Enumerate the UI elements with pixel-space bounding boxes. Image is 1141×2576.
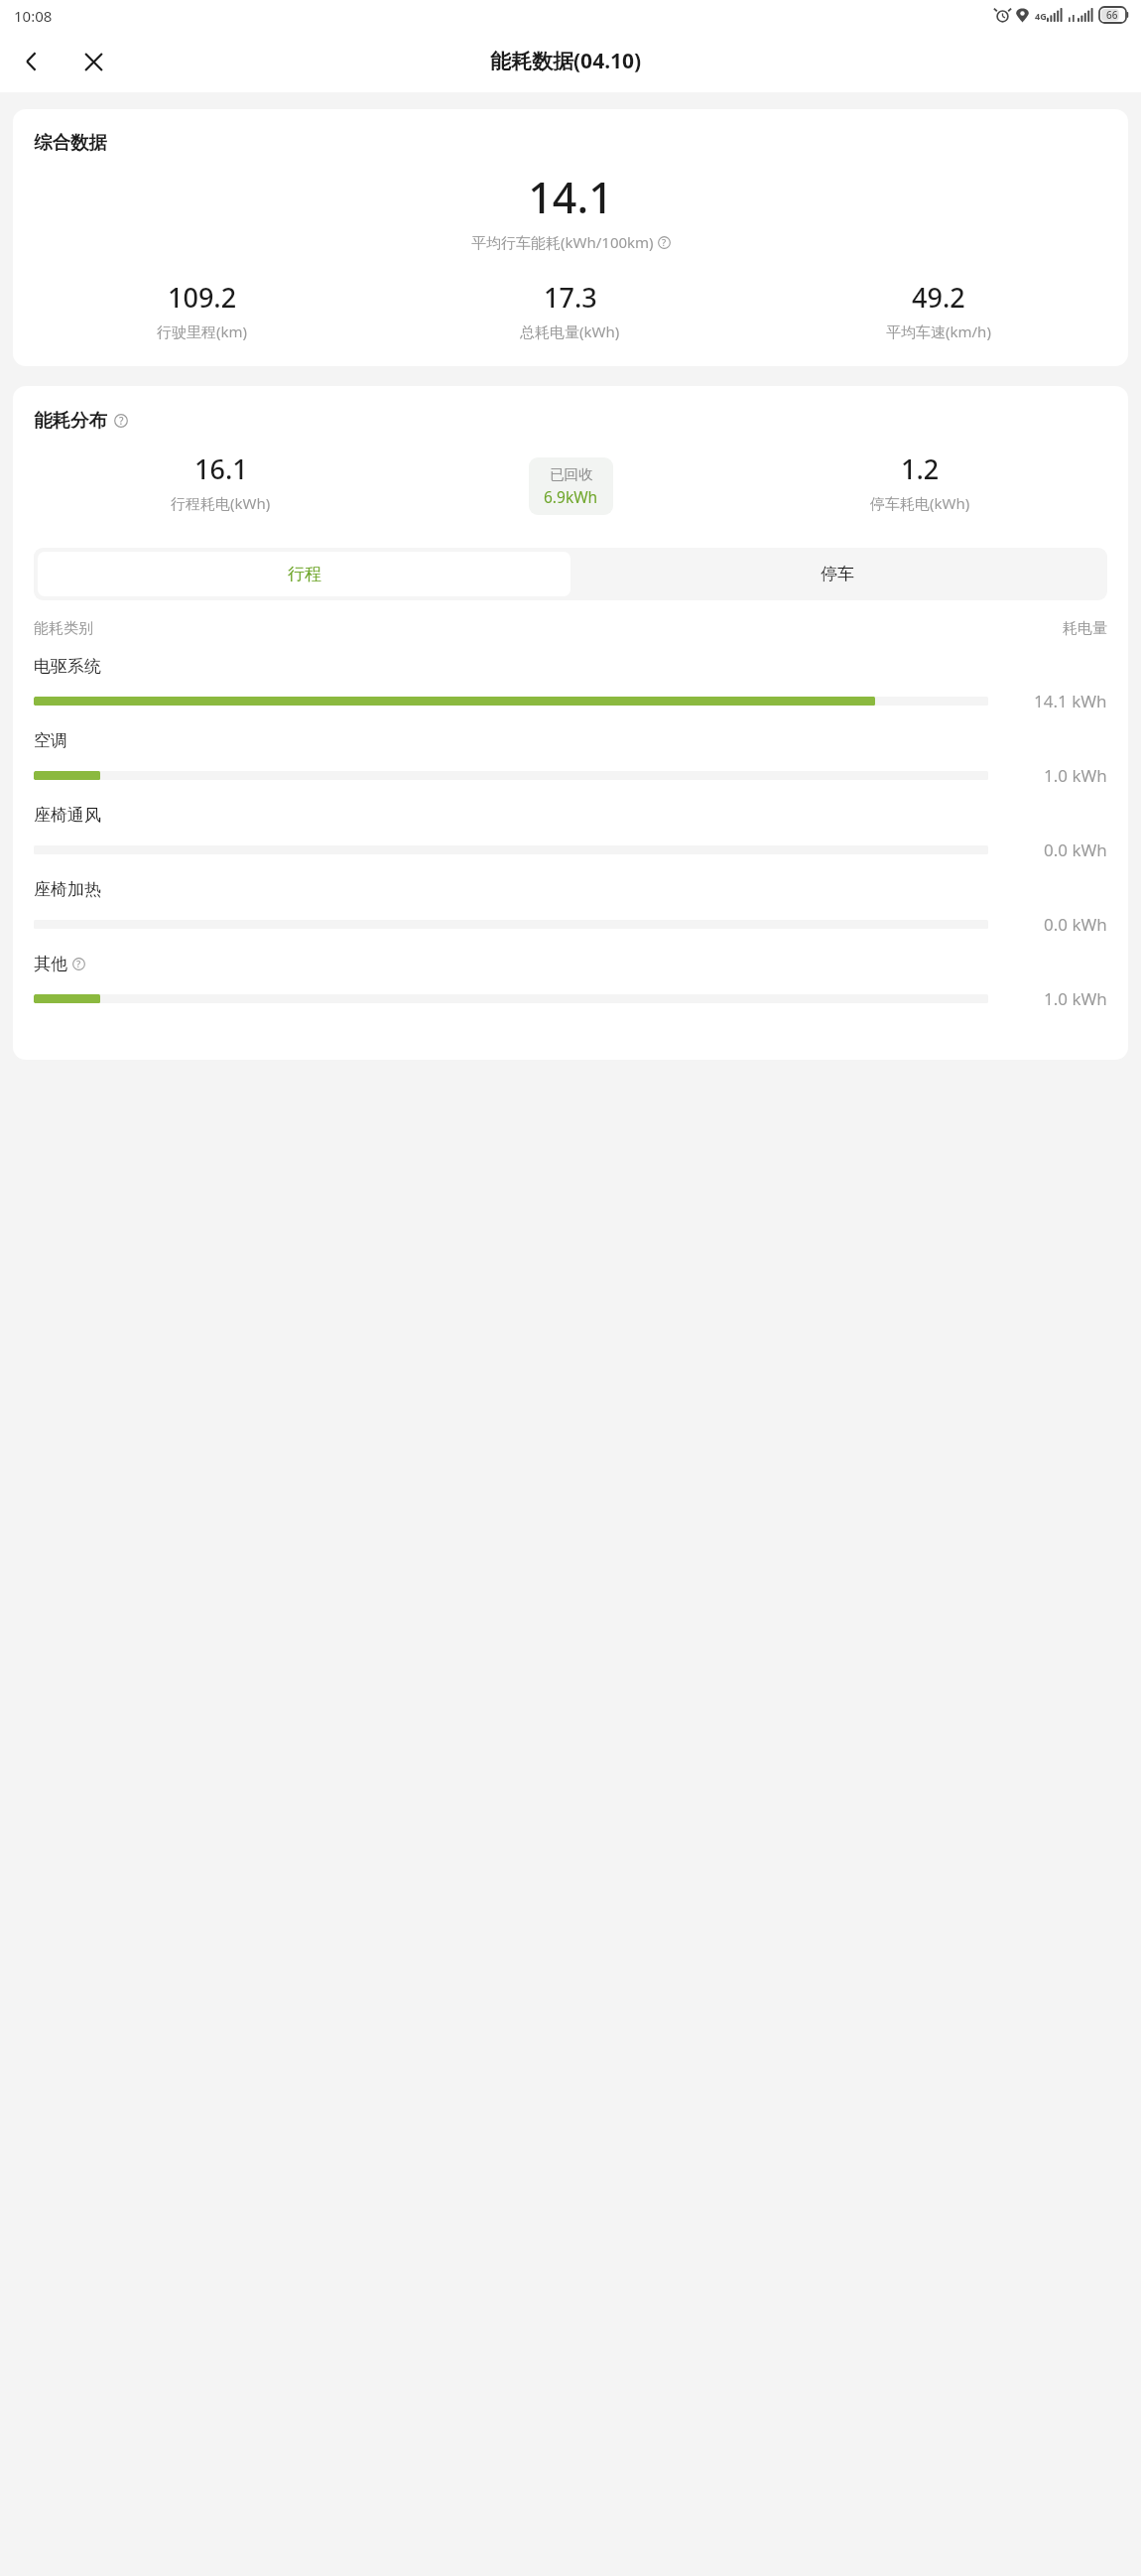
staticText: 16.1: [194, 451, 248, 487]
staticText: 行程耗电(kWh): [171, 493, 271, 513]
staticText: 空调: [34, 730, 67, 751]
staticText: 109.2: [168, 279, 237, 316]
staticText: 其他: [34, 954, 67, 974]
staticText: 能耗数据(04.10): [490, 47, 642, 75]
staticText: 6.9kWh: [544, 486, 598, 507]
staticText: 17.3: [544, 279, 597, 316]
staticText: 已回收: [550, 465, 593, 483]
staticText: 能耗分布: [34, 409, 107, 432]
staticText: 平均行车能耗(kWh/100km): [471, 232, 654, 252]
staticText: 综合数据: [34, 131, 107, 154]
button[interactable]: Close: [69, 38, 117, 85]
staticText: 0.0 kWh: [1044, 838, 1107, 861]
staticText: 座椅加热: [34, 879, 101, 900]
button[interactable]: 已回收: [529, 457, 613, 515]
staticText: ?: [76, 958, 81, 970]
staticText: 10:08: [14, 6, 53, 26]
staticText: 耗电量: [1063, 619, 1107, 638]
staticText: 1.0 kWh: [1044, 987, 1107, 1010]
staticText: 停车耗电(kWh): [870, 493, 970, 513]
staticText: 1.2: [901, 451, 940, 487]
staticText: 总耗电量(kWh): [520, 322, 620, 341]
staticText: 14.1: [13, 168, 1128, 226]
staticText: 4G: [1035, 10, 1047, 22]
staticText: ?: [662, 236, 667, 249]
staticText: 行程: [288, 564, 321, 584]
button[interactable]: Back: [8, 38, 56, 85]
staticText: ?: [119, 414, 124, 428]
button[interactable]: 停车: [570, 552, 1103, 596]
staticText: 电驱系统: [34, 656, 101, 677]
button[interactable]: 行程: [38, 552, 570, 596]
staticText: 0.0 kWh: [1044, 913, 1107, 936]
staticText: 停车: [821, 564, 854, 584]
button[interactable]: 综合数据: [13, 109, 1128, 366]
staticText: 平均车速(km/h): [886, 322, 991, 341]
staticText: 能耗类别: [34, 619, 93, 638]
staticText: 66: [1106, 8, 1118, 22]
staticText: 行驶里程(km): [157, 322, 248, 341]
staticText: 49.2: [912, 279, 965, 316]
staticText: 14.1 kWh: [1034, 690, 1107, 712]
staticText: 1.0 kWh: [1044, 764, 1107, 787]
staticText: 座椅通风: [34, 805, 101, 826]
